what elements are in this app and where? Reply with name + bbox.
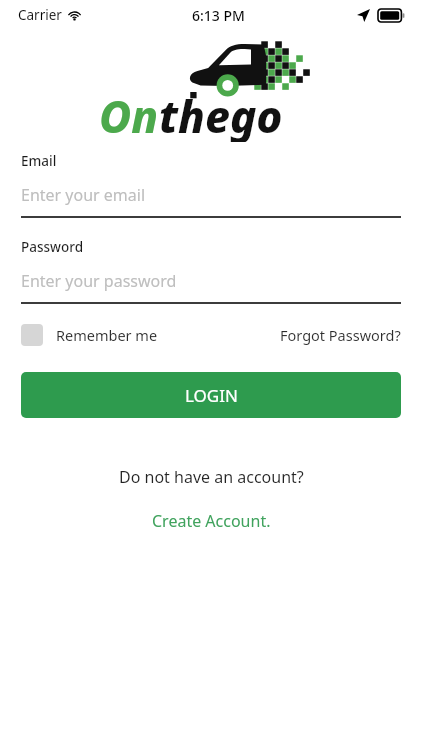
staticText: Email bbox=[21, 152, 57, 170]
button[interactable]: Enter your password bbox=[21, 270, 401, 304]
staticText: Carrier bbox=[18, 6, 62, 24]
button[interactable]: Create Account. bbox=[152, 510, 271, 532]
staticText: Enter your email bbox=[21, 184, 146, 206]
staticText: LOGIN bbox=[185, 384, 238, 407]
staticText: On bbox=[99, 86, 159, 142]
button[interactable]: Enter your email bbox=[21, 184, 401, 218]
staticText: thego bbox=[159, 86, 283, 142]
button[interactable]: LOGIN bbox=[21, 372, 401, 418]
button[interactable]: Remember me bbox=[21, 324, 158, 346]
staticText: Create Account. bbox=[152, 510, 271, 532]
staticText: Enter your password bbox=[21, 270, 177, 292]
button[interactable]: Forgot Password? bbox=[280, 325, 401, 345]
staticText: Forgot Password? bbox=[280, 325, 401, 345]
staticText: Do not have an account? bbox=[119, 466, 304, 488]
staticText: Password bbox=[21, 238, 84, 256]
staticText: Remember me bbox=[56, 325, 158, 345]
staticText: 6:13 PM bbox=[192, 6, 245, 25]
